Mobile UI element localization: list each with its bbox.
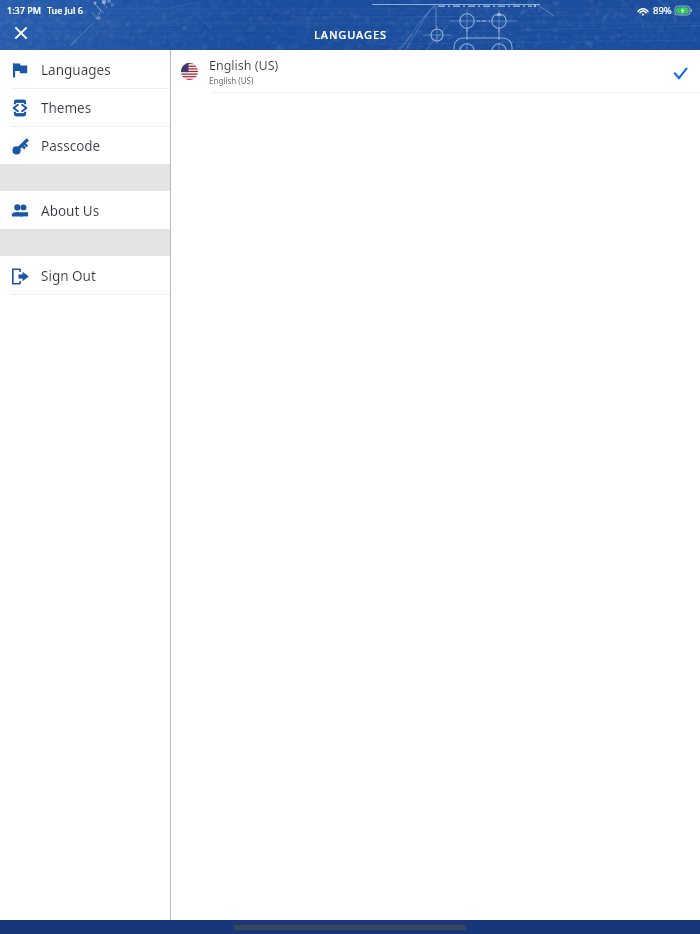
- staticText: Languages: [41, 61, 111, 79]
- staticText: Passcode: [41, 137, 101, 155]
- button[interactable]: About Us: [0, 192, 170, 229]
- button[interactable]: Passcode: [0, 127, 170, 164]
- staticText: Sign Out: [41, 267, 96, 285]
- staticText: Tue Jul 6: [47, 4, 83, 16]
- staticText: About Us: [41, 202, 100, 220]
- staticText: 1:37 PM: [7, 4, 41, 16]
- staticText: Themes: [41, 99, 92, 117]
- button[interactable]: Themes: [0, 89, 170, 126]
- staticText: LANGUAGES: [314, 27, 387, 42]
- button[interactable]: English (US): [171, 50, 700, 92]
- staticText: 89%: [653, 4, 672, 17]
- staticText: English (US): [209, 75, 254, 86]
- button[interactable]: Sign Out: [0, 257, 170, 294]
- button[interactable]: Languages: [0, 51, 170, 88]
- staticText: English (US): [209, 57, 279, 74]
- button[interactable]: Close: [0, 14, 40, 54]
